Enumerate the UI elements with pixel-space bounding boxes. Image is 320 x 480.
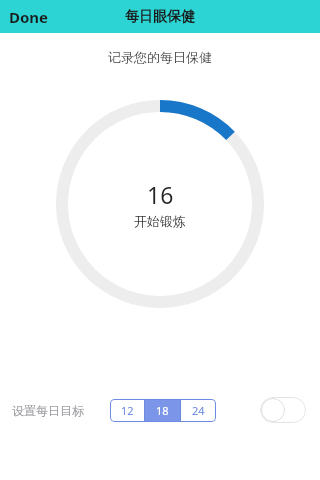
- staticText: 开始锻炼: [134, 213, 186, 229]
- button[interactable]: 18: [145, 399, 180, 422]
- staticText: 16: [147, 179, 174, 210]
- staticText: 12: [121, 403, 134, 418]
- staticText: Done: [9, 7, 49, 27]
- staticText: 设置每日目标: [12, 403, 90, 418]
- staticText: 记录您的每日保健: [108, 49, 212, 65]
- button[interactable]: Done: [0, 3, 58, 31]
- button[interactable]: 开始锻炼: [56, 100, 264, 308]
- staticText: 24: [192, 403, 205, 418]
- button[interactable]: 12: [110, 399, 144, 422]
- button[interactable]: 24: [181, 399, 216, 422]
- staticText: 每日眼保健: [125, 8, 195, 26]
- button[interactable]: 提醒开关: [260, 397, 306, 423]
- staticText: 18: [156, 403, 169, 418]
